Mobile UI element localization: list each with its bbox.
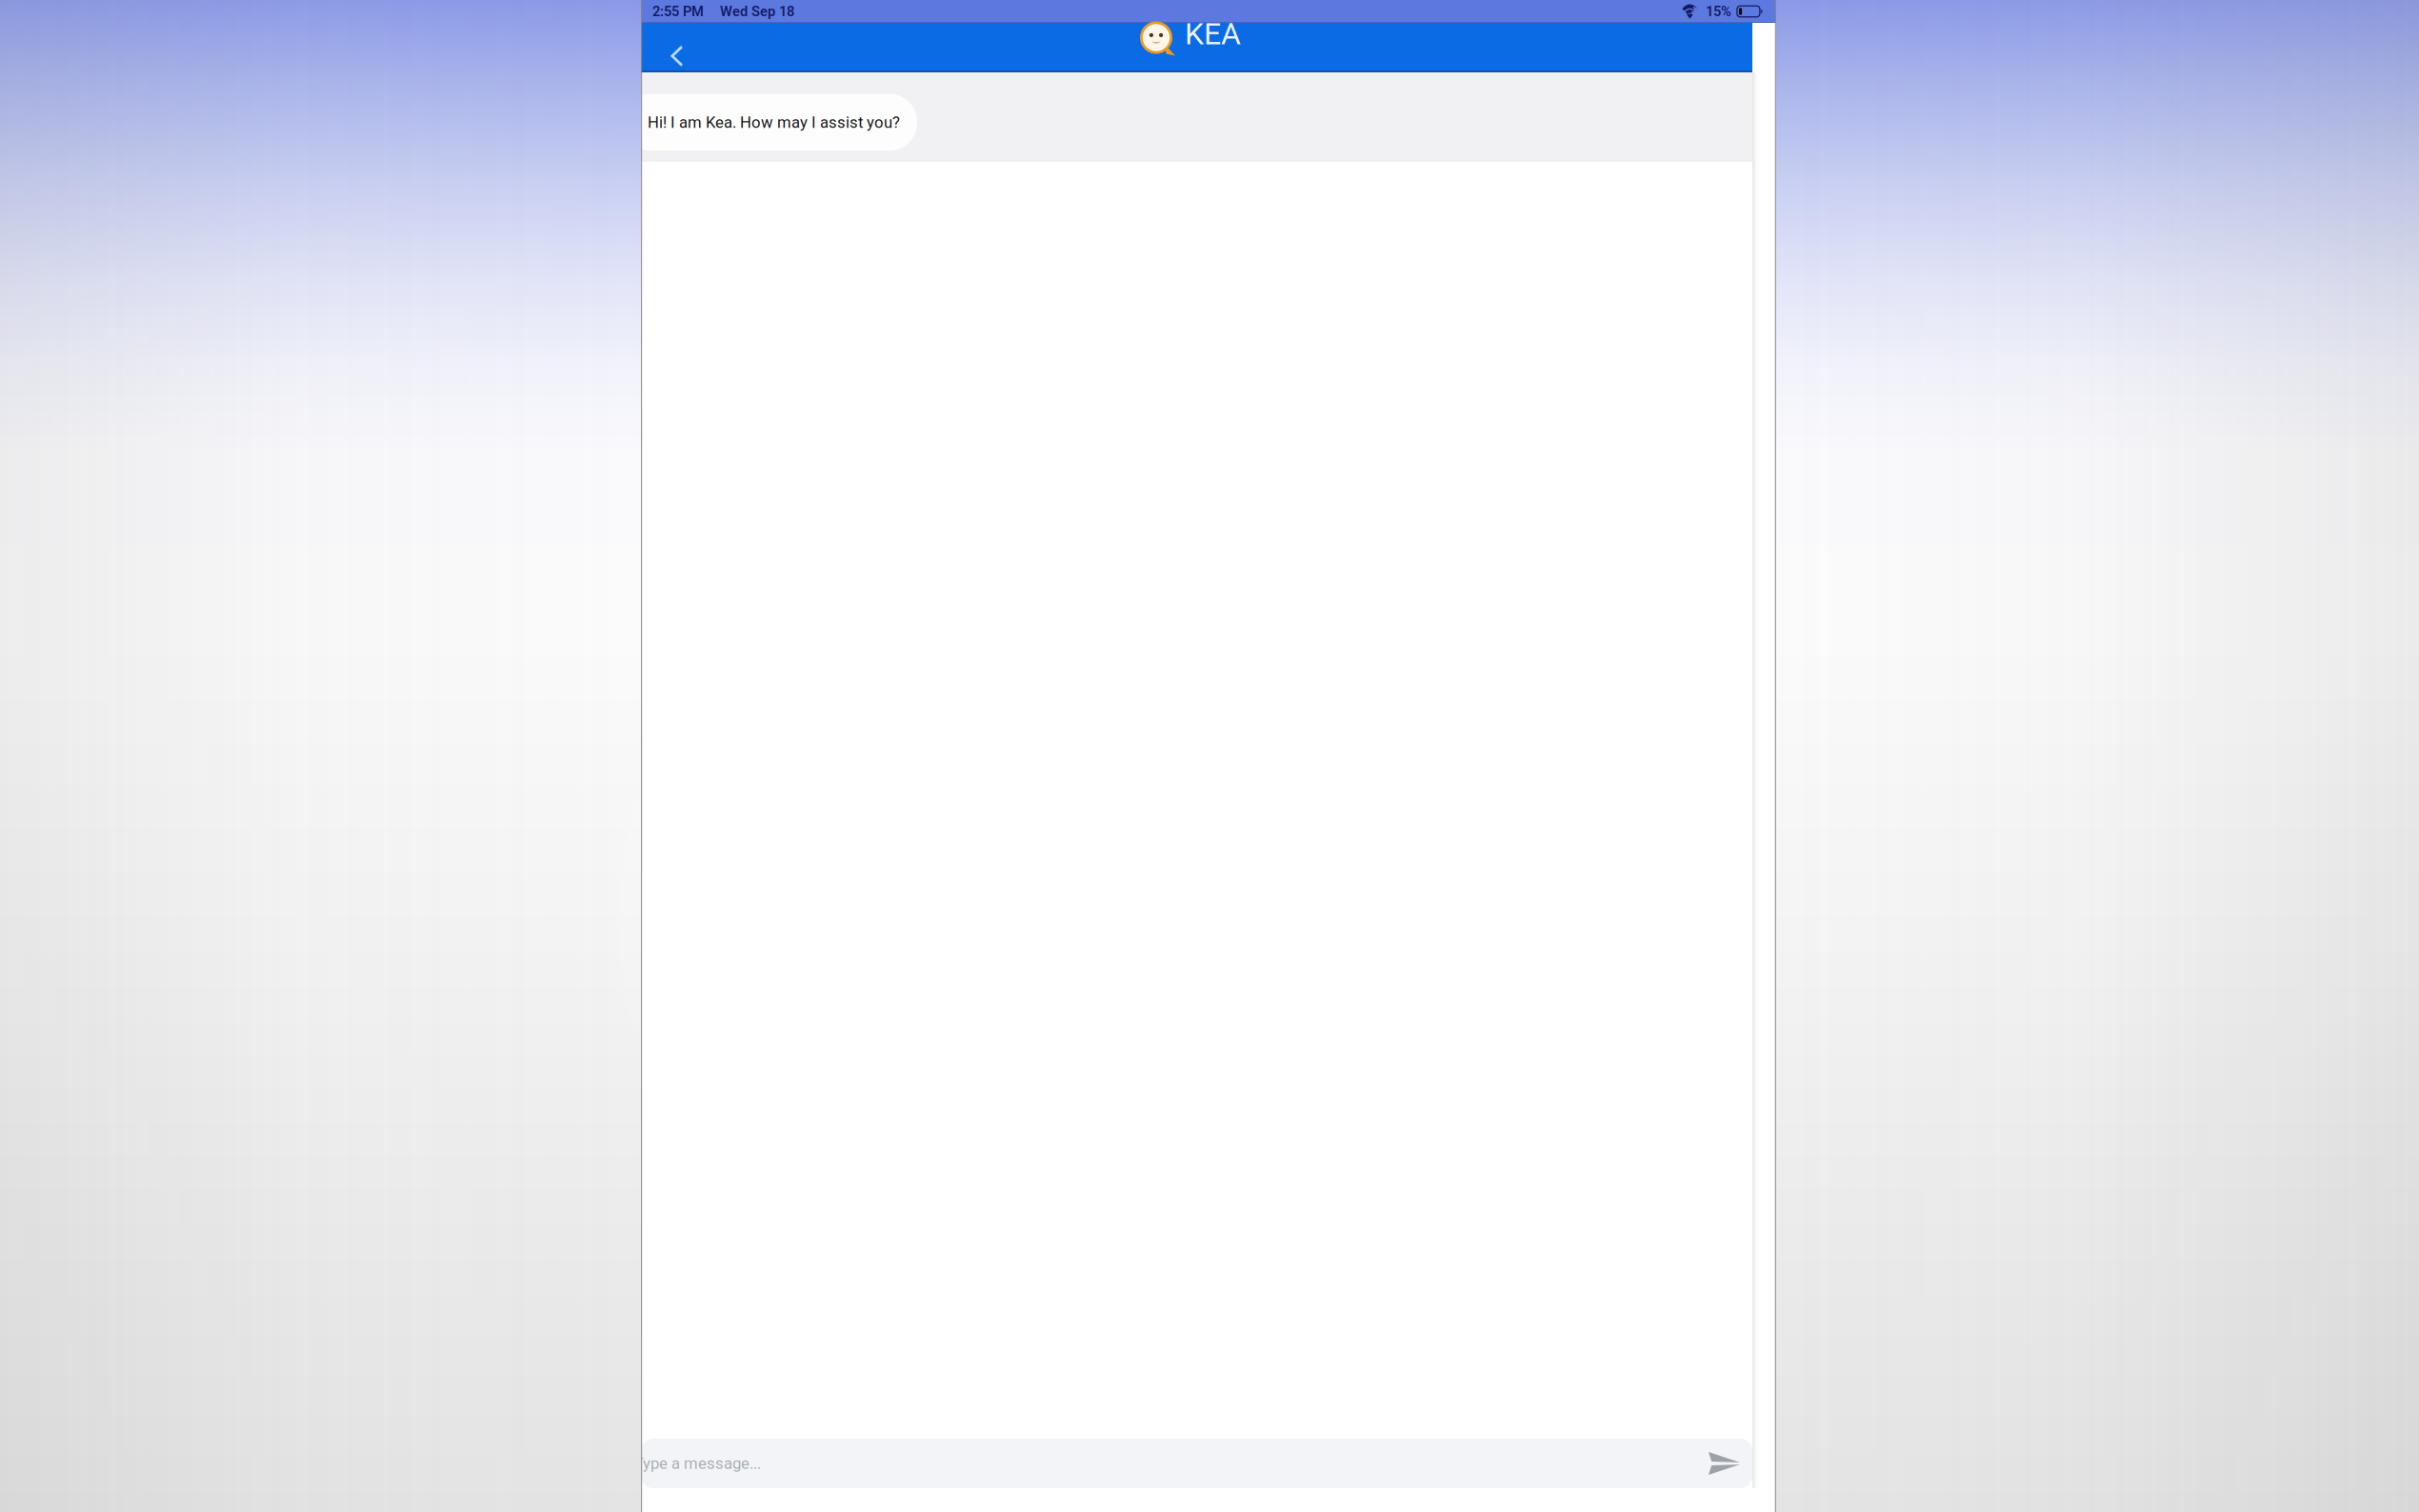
button[interactable]: Back bbox=[641, 23, 703, 72]
staticText: Hi! I am Kea. How may I assist you? bbox=[648, 113, 900, 132]
button[interactable]: Type a message... bbox=[610, 1439, 1698, 1488]
staticText: Wed Sep 18 bbox=[720, 3, 794, 20]
staticText: 15% bbox=[1706, 3, 1731, 20]
staticText: KEA bbox=[1185, 16, 1241, 52]
staticText: Type a message... bbox=[634, 1454, 761, 1473]
button[interactable]: Send bbox=[1698, 1441, 1745, 1486]
staticText: 2:55 PM bbox=[652, 3, 704, 20]
